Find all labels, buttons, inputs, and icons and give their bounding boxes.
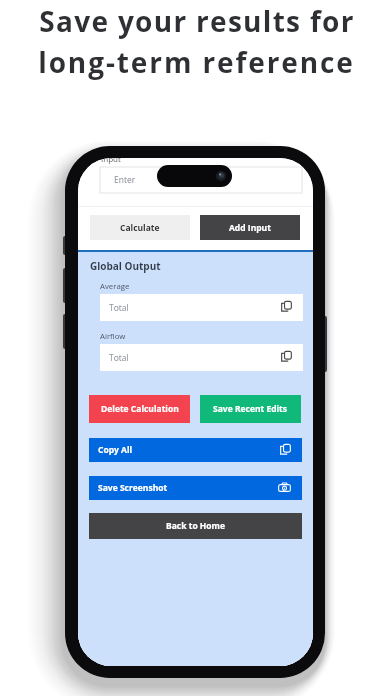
other: Copy: [280, 444, 291, 455]
button[interactable]: Add Input: [200, 215, 300, 240]
staticText: Input: [101, 158, 121, 164]
staticText: Delete Calculation: [101, 403, 179, 415]
button[interactable]: Copy All: [89, 438, 302, 462]
other: Copy: [281, 301, 292, 312]
staticText: Calculate: [120, 222, 160, 234]
button[interactable]: Calculate: [90, 215, 190, 240]
staticText: Total: [109, 352, 129, 364]
staticText: Airflow: [100, 331, 126, 342]
button[interactable]: Save Screenshot: [89, 476, 302, 500]
staticText: Save Recent Edits: [213, 403, 288, 415]
staticText: Global Output: [90, 259, 161, 273]
button[interactable]: Save Recent Edits: [200, 395, 301, 423]
staticText: Enter: [114, 174, 136, 186]
staticText: Add Input: [229, 222, 271, 234]
staticText: Save your results for: [39, 2, 355, 40]
staticText: long-term reference: [38, 43, 355, 81]
staticText: Average: [100, 281, 130, 292]
staticText: Copy All: [98, 444, 133, 456]
other: Copy: [281, 351, 292, 362]
button[interactable]: Total: [100, 294, 303, 321]
staticText: Total: [109, 302, 129, 314]
staticText: Back to Home: [166, 520, 225, 532]
button[interactable]: Delete Calculation: [89, 395, 190, 423]
other: Take screenshot: [278, 481, 291, 494]
button[interactable]: Total: [100, 344, 303, 371]
button[interactable]: Back to Home: [89, 513, 302, 539]
staticText: Save Screenshot: [98, 482, 168, 494]
